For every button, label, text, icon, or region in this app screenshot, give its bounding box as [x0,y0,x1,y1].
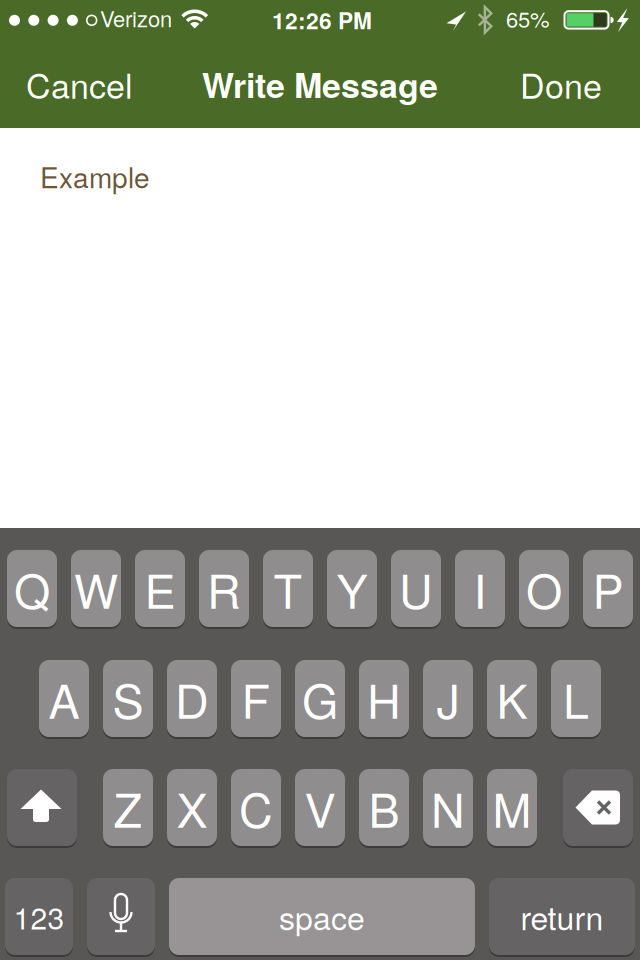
staticText: space [279,894,365,939]
staticText: M [492,774,531,841]
button[interactable]: Q [7,550,57,627]
button[interactable]: U [391,550,441,627]
button[interactable]: B [359,769,409,846]
button[interactable]: X [167,769,217,846]
button[interactable]: C [231,769,281,846]
button[interactable]: P [583,550,633,627]
button[interactable]: L [551,660,601,737]
button[interactable]: Y [327,550,377,627]
staticText: I [473,555,486,622]
button[interactable]: Cancel [26,60,133,108]
button[interactable]: S [103,660,153,737]
button[interactable]: space [169,878,475,955]
staticText: 123 [13,895,64,938]
staticText: H [367,665,401,732]
button[interactable]: O [519,550,569,627]
button[interactable] [7,769,77,846]
staticText: S [112,665,143,732]
button[interactable]: A [39,660,89,737]
staticText: Done [520,60,602,108]
staticText: W [74,555,118,622]
staticText: Verizon [100,2,172,33]
staticText: E [144,555,175,622]
staticText: B [368,774,399,841]
staticText: F [241,665,270,732]
button[interactable]: D [167,660,217,737]
staticText: P [592,555,623,622]
button[interactable]: K [487,660,537,737]
staticText: 12:26 PM [272,4,372,36]
button[interactable]: V [295,769,345,846]
button[interactable]: Done [520,60,602,108]
staticText: return [520,894,603,939]
staticText: O [526,555,562,622]
button[interactable] [563,769,633,846]
staticText: C [239,774,273,841]
button[interactable]: R [199,550,249,627]
button[interactable]: Z [103,769,153,846]
staticText: Cancel [26,60,133,108]
button[interactable]: I [455,550,505,627]
button[interactable]: 123 [5,878,73,955]
staticText: Y [336,555,367,622]
staticText: T [273,555,302,622]
button[interactable]: W [71,550,121,627]
staticText: G [302,665,338,732]
staticText: U [399,555,433,622]
button[interactable] [87,878,155,955]
staticText: J [436,665,459,732]
staticText: Q [14,555,50,622]
staticText: L [563,665,589,732]
staticText: A [48,665,79,732]
button[interactable]: T [263,550,313,627]
button[interactable]: M [487,769,537,846]
button[interactable]: N [423,769,473,846]
staticText: R [207,555,241,622]
staticText: K [496,665,527,732]
button[interactable]: E [135,550,185,627]
staticText: Write Message [202,60,438,108]
staticText: D [175,665,209,732]
button[interactable]: F [231,660,281,737]
staticText: X [176,774,207,841]
staticText: Z [113,774,142,841]
button[interactable]: G [295,660,345,737]
button[interactable]: H [359,660,409,737]
staticText: V [304,774,335,841]
staticText: Example [40,156,150,196]
button[interactable]: return [489,878,635,955]
button[interactable]: J [423,660,473,737]
staticText: 65% [506,2,550,34]
staticText: N [431,774,465,841]
